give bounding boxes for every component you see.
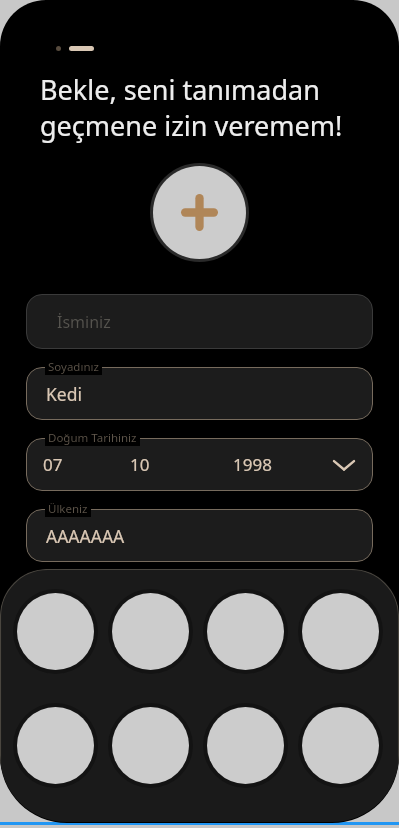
staticText: İsminiz (57, 311, 111, 333)
button[interactable]: Add profile photo (153, 166, 246, 259)
button[interactable]: Avatar option (302, 707, 379, 784)
button[interactable]: İsminiz (26, 294, 373, 349)
button[interactable]: Avatar option (112, 707, 189, 784)
button[interactable]: 07 (26, 438, 373, 491)
button[interactable]: AAAAAAA (26, 509, 373, 562)
button[interactable]: Avatar option (302, 593, 379, 670)
staticText: 07 (43, 453, 63, 476)
button[interactable]: Avatar option (17, 707, 94, 784)
staticText: Kedi (46, 382, 82, 406)
staticText: Bekle, seni tanımadan geçmene izin verem… (40, 71, 359, 144)
button[interactable]: Avatar option (112, 593, 189, 670)
button[interactable]: Avatar option (17, 593, 94, 670)
staticText: AAAAAAA (46, 524, 125, 548)
staticText: 1998 (233, 453, 272, 476)
staticText: 10 (130, 453, 150, 476)
staticText: Doğum Tarihiniz (48, 430, 137, 446)
staticText: Soyadınız (48, 359, 99, 375)
button[interactable]: Avatar option (207, 707, 284, 784)
button[interactable]: Kedi (26, 367, 373, 420)
button[interactable]: Avatar option (207, 593, 284, 670)
staticText: Ülkeniz (48, 501, 88, 517)
